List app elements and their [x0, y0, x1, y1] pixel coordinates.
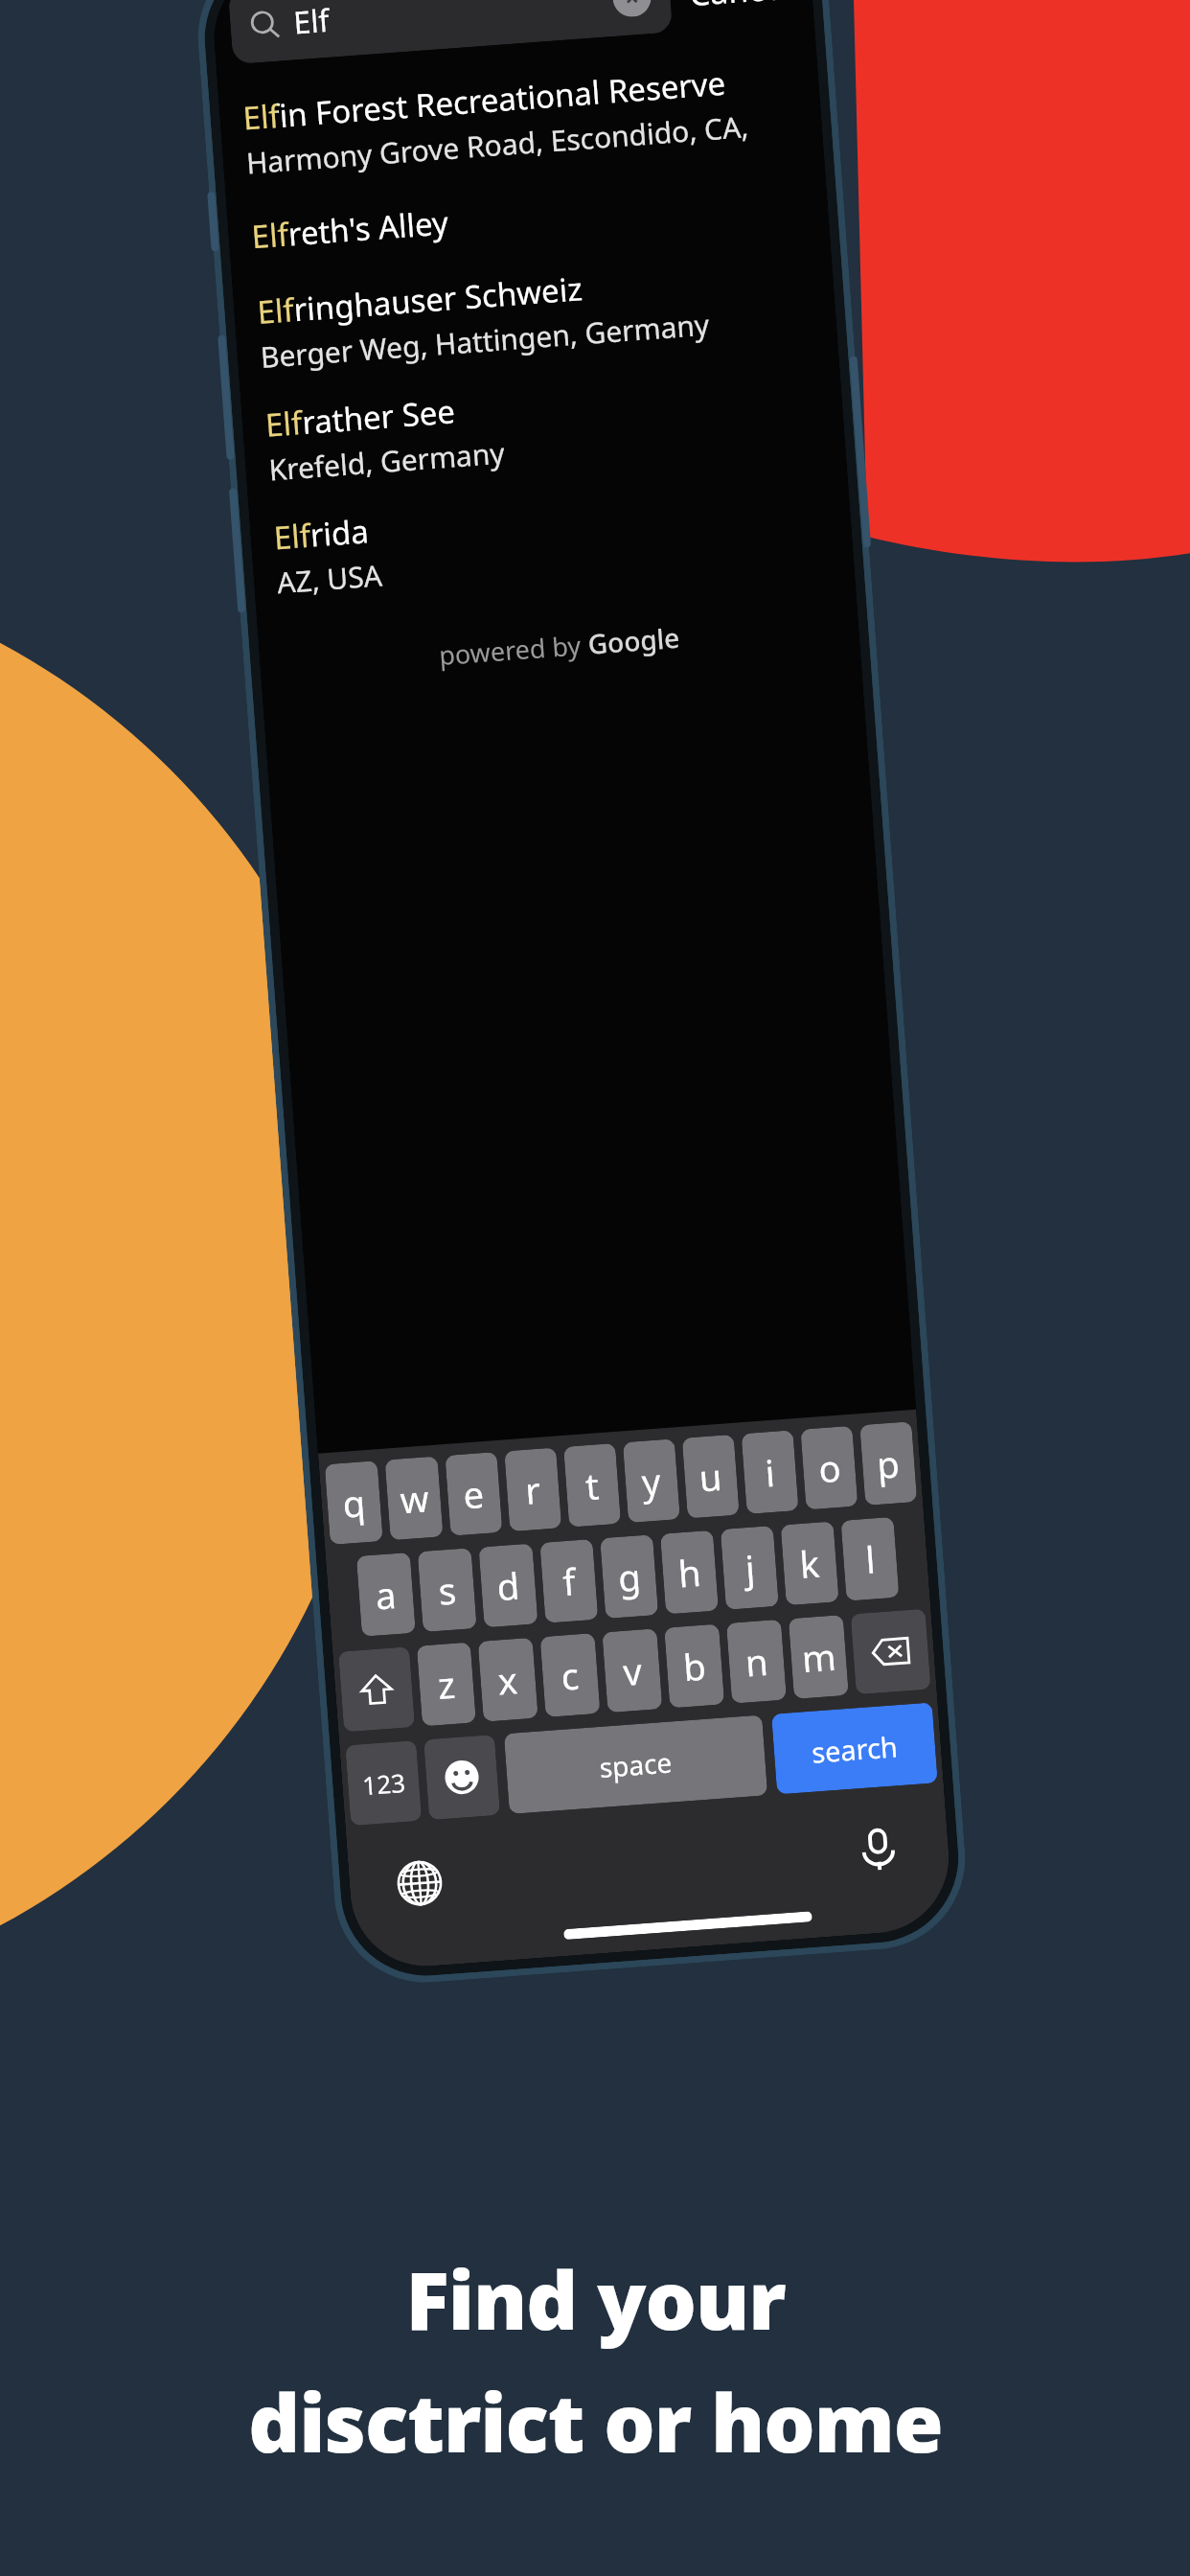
- button[interactable]: space: [504, 1715, 768, 1814]
- button[interactable]: x: [478, 1638, 538, 1722]
- button[interactable]: 123: [345, 1740, 422, 1826]
- button[interactable]: u: [682, 1434, 739, 1518]
- staticText: Elfin Forest Recreational Reserve: [241, 61, 727, 140]
- staticText: space: [598, 1744, 673, 1785]
- button[interactable]: d: [479, 1543, 538, 1628]
- staticText: z: [436, 1659, 457, 1710]
- button[interactable]: p: [860, 1421, 917, 1505]
- button[interactable]: g: [600, 1535, 658, 1619]
- button[interactable]: Elfringhauser Schweiz: [232, 244, 838, 382]
- staticText: e: [461, 1468, 486, 1520]
- button[interactable]: n: [726, 1619, 787, 1704]
- staticText: u: [697, 1451, 724, 1502]
- button[interactable]: Elfrather See: [241, 357, 846, 495]
- staticText: Elfrida: [272, 509, 371, 559]
- staticText: search: [810, 1727, 899, 1771]
- staticText: Krefeld, Germany: [267, 433, 506, 489]
- staticText: g: [616, 1551, 643, 1602]
- button[interactable]: search: [771, 1702, 938, 1794]
- button[interactable]: k: [780, 1521, 839, 1605]
- staticText: m: [800, 1631, 838, 1683]
- button[interactable]: t: [563, 1443, 621, 1527]
- button[interactable]: i: [741, 1430, 799, 1514]
- button[interactable]: j: [720, 1526, 779, 1610]
- staticText: a: [374, 1569, 398, 1620]
- button[interactable]: Elfreth's Alley: [227, 169, 829, 264]
- button[interactable]: r: [504, 1447, 562, 1532]
- staticText: 123: [361, 1765, 407, 1802]
- staticText: Elfreth's Alley: [250, 201, 450, 258]
- staticText: w: [398, 1472, 431, 1524]
- button[interactable]: v: [602, 1628, 662, 1713]
- button[interactable]: q: [325, 1461, 383, 1545]
- staticText: l: [864, 1534, 877, 1584]
- button[interactable]: Elfrida: [249, 470, 854, 608]
- button[interactable]: Backspace: [850, 1609, 931, 1695]
- staticText: x: [496, 1654, 520, 1705]
- button[interactable]: Elfin Forest Recreational Reserve: [218, 50, 823, 188]
- staticText: r: [523, 1464, 542, 1515]
- staticText: Google: [587, 619, 681, 662]
- button[interactable]: Elf: [228, 0, 673, 64]
- staticText: o: [817, 1442, 842, 1493]
- button[interactable]: o: [800, 1426, 858, 1510]
- button[interactable]: a: [356, 1552, 416, 1637]
- button[interactable]: h: [660, 1530, 719, 1614]
- staticText: v: [621, 1645, 644, 1696]
- staticText: y: [640, 1455, 663, 1506]
- staticText: Find your: [405, 2243, 786, 2353]
- button[interactable]: e: [445, 1452, 502, 1536]
- button[interactable]: Clear search: [611, 0, 652, 18]
- button[interactable]: b: [664, 1624, 725, 1708]
- staticText: c: [559, 1650, 581, 1701]
- staticText: Elfringhauser Schweiz: [256, 267, 584, 333]
- button[interactable]: Emoji: [423, 1735, 500, 1820]
- button[interactable]: y: [623, 1439, 680, 1523]
- button[interactable]: Dictation: [844, 1816, 912, 1883]
- staticText: b: [682, 1640, 708, 1692]
- staticText: p: [875, 1438, 902, 1489]
- staticText: j: [743, 1543, 757, 1593]
- staticText: Elf: [292, 0, 331, 44]
- staticText: t: [584, 1460, 601, 1511]
- staticText: Elfrather See: [264, 389, 457, 446]
- staticText: q: [341, 1477, 368, 1528]
- button[interactable]: Change keyboard language: [386, 1849, 454, 1917]
- staticText: k: [798, 1538, 822, 1589]
- button[interactable]: z: [417, 1642, 476, 1726]
- staticText: Harmony Grove Road, Escondido, CA, USA: [245, 103, 800, 182]
- staticText: h: [677, 1546, 703, 1598]
- staticText: Cancel: [688, 0, 792, 15]
- button[interactable]: Cancel: [683, 0, 797, 27]
- staticText: i: [763, 1447, 777, 1497]
- button[interactable]: c: [540, 1633, 600, 1717]
- button[interactable]: f: [540, 1539, 598, 1623]
- staticText: f: [561, 1556, 578, 1606]
- staticText: disctrict or home: [248, 2366, 943, 2475]
- staticText: powered by: [438, 627, 589, 673]
- staticText: n: [744, 1636, 770, 1687]
- button[interactable]: l: [841, 1517, 899, 1601]
- button[interactable]: w: [385, 1456, 443, 1540]
- button[interactable]: s: [417, 1548, 477, 1632]
- staticText: s: [437, 1564, 459, 1616]
- button[interactable]: m: [788, 1615, 849, 1699]
- staticText: d: [495, 1560, 522, 1611]
- button[interactable]: Shift: [338, 1647, 415, 1732]
- staticText: Berger Weg, Hattingen, Germany: [259, 304, 711, 377]
- staticText: AZ, USA: [276, 555, 384, 602]
